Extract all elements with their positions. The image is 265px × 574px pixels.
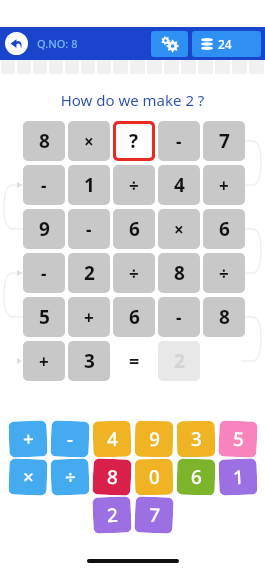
staticText: 7 (219, 128, 230, 154)
staticText: 9 (39, 216, 50, 242)
staticText: 2 (84, 260, 95, 286)
staticText: × (84, 130, 94, 153)
staticText: 8 (39, 128, 50, 154)
button[interactable]: ÷ (113, 165, 155, 205)
staticText: 5 (232, 426, 244, 452)
staticText: = (129, 349, 140, 374)
staticText: 7 (148, 502, 160, 528)
staticText: 0 (149, 464, 160, 490)
staticText: - (41, 262, 47, 285)
button[interactable]: + (203, 165, 245, 205)
button[interactable]: ? (116, 124, 152, 158)
staticText: 1 (232, 464, 244, 490)
staticText: Q.NO: 8 (37, 36, 78, 51)
button[interactable]: 7 (134, 496, 174, 534)
button[interactable]: × (158, 209, 200, 249)
button[interactable]: 5 (23, 297, 65, 337)
staticText: - (176, 306, 182, 329)
staticText: 5 (39, 304, 50, 330)
staticText: ÷ (129, 174, 139, 197)
staticText: 6 (129, 216, 140, 242)
button[interactable]: 0 (135, 459, 173, 495)
staticText: 3 (84, 348, 95, 374)
button[interactable]: 5 (218, 420, 258, 458)
button[interactable]: 2 (158, 341, 200, 381)
staticText: 4 (107, 426, 118, 452)
button[interactable]: 2 (92, 496, 132, 534)
button[interactable]: 8 (203, 297, 245, 337)
staticText: × (22, 464, 34, 490)
button[interactable]: 9 (135, 421, 173, 457)
button[interactable]: 6 (113, 297, 155, 337)
button[interactable]: 6 (176, 458, 215, 495)
staticText: 24 (218, 36, 232, 52)
button[interactable]: - (158, 297, 200, 337)
button[interactable]: × (8, 458, 48, 496)
staticText: 6 (191, 464, 202, 490)
staticText: ÷ (64, 464, 76, 490)
button[interactable]: + (23, 341, 65, 381)
staticText: 8 (219, 304, 230, 330)
staticText: + (39, 350, 49, 373)
staticText: ÷ (219, 262, 229, 285)
button[interactable]: - (68, 209, 110, 249)
button[interactable]: ÷ (203, 253, 245, 293)
button[interactable]: - (158, 121, 200, 161)
button[interactable]: 3 (68, 341, 110, 381)
staticText: 9 (149, 426, 160, 452)
button[interactable]: + (68, 297, 110, 337)
button[interactable]: 1 (218, 458, 258, 496)
button[interactable]: - (23, 253, 65, 293)
button[interactable]: ÷ (113, 253, 155, 293)
button[interactable]: + (8, 420, 48, 458)
button[interactable]: Settings (151, 31, 188, 57)
staticText: 6 (219, 216, 230, 242)
button[interactable]: Back (5, 32, 28, 55)
staticText: + (84, 306, 94, 329)
button[interactable]: 8 (23, 121, 65, 161)
button[interactable]: × (68, 121, 110, 161)
button[interactable]: 7 (203, 121, 245, 161)
staticText: - (41, 174, 47, 197)
staticText: 6 (129, 304, 140, 330)
staticText: 1 (84, 172, 95, 198)
staticText: 2 (174, 348, 185, 374)
staticText: - (66, 426, 74, 452)
button[interactable]: 4 (158, 165, 200, 205)
staticText: + (22, 426, 34, 452)
button[interactable]: 4 (92, 420, 131, 457)
staticText: ? (129, 128, 139, 154)
button[interactable]: 1 (68, 165, 110, 205)
staticText: 3 (191, 426, 202, 452)
staticText: 8 (106, 464, 118, 490)
staticText: 8 (174, 260, 185, 286)
button[interactable]: 6 (203, 209, 245, 249)
staticText: - (176, 130, 182, 153)
staticText: 2 (106, 502, 118, 528)
staticText: + (219, 174, 229, 197)
button[interactable]: 9 (23, 209, 65, 249)
button[interactable]: - (50, 420, 90, 458)
staticText: How do we make 2 ? (0, 90, 265, 110)
button[interactable]: 2 (68, 253, 110, 293)
button[interactable]: ÷ (50, 458, 90, 496)
button[interactable]: 8 (92, 458, 132, 496)
button[interactable]: - (23, 165, 65, 205)
staticText: 4 (174, 172, 185, 198)
staticText: × (174, 218, 184, 241)
staticText: - (86, 218, 92, 241)
staticText: ÷ (129, 262, 139, 285)
button[interactable]: 6 (113, 209, 155, 249)
button[interactable]: 24 (192, 31, 261, 57)
button[interactable]: 8 (158, 253, 200, 293)
button[interactable]: 3 (177, 421, 215, 457)
